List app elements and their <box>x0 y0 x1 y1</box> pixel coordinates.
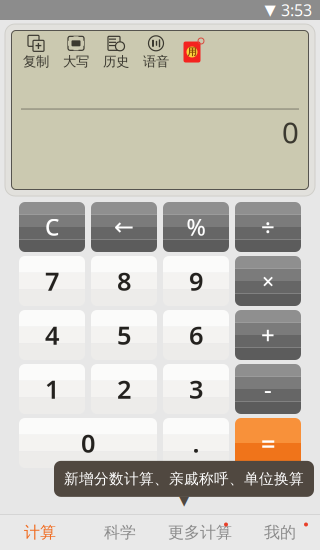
staticText: 计算 <box>24 523 56 542</box>
staticText: ← <box>114 213 134 241</box>
button[interactable]: 9 <box>163 256 229 306</box>
button[interactable]: 2 <box>91 364 157 414</box>
staticText: C <box>45 212 59 242</box>
staticText: 2 <box>117 372 131 406</box>
button[interactable]: 4 <box>19 310 85 360</box>
staticText: - <box>264 373 272 405</box>
button[interactable]: % <box>163 202 229 252</box>
button[interactable]: 6 <box>163 310 229 360</box>
button[interactable]: . <box>163 418 229 468</box>
staticText: 8 <box>117 264 131 298</box>
button[interactable]: Red packet <box>177 34 207 70</box>
button[interactable]: ← <box>91 202 157 252</box>
button[interactable]: 大写 <box>57 34 95 70</box>
button[interactable]: 我的 <box>240 514 320 550</box>
button[interactable]: 8 <box>91 256 157 306</box>
staticText: ÷ <box>261 211 275 243</box>
staticText: 4 <box>45 318 59 352</box>
staticText: ▼ <box>264 2 275 18</box>
staticText: 7 <box>45 264 59 298</box>
button[interactable]: 科学 <box>80 514 160 550</box>
button[interactable]: 更多计算 <box>160 514 240 550</box>
button[interactable]: = <box>235 418 301 468</box>
button[interactable]: × <box>235 256 301 306</box>
button[interactable]: 计算 <box>0 514 80 550</box>
staticText: + <box>261 319 275 351</box>
staticText: 语音 <box>143 53 169 70</box>
button[interactable]: 5 <box>91 310 157 360</box>
staticText: 我的 <box>264 523 296 542</box>
staticText: × <box>262 267 274 295</box>
staticText: 历史 <box>103 53 129 70</box>
staticText: 复制 <box>23 53 49 70</box>
staticText: 大写 <box>63 53 89 70</box>
staticText: . <box>192 426 199 460</box>
button[interactable]: - <box>235 364 301 414</box>
button[interactable]: 语音 <box>137 34 175 70</box>
staticText: 6 <box>189 318 203 352</box>
staticText: 3 <box>189 372 203 406</box>
staticText: = <box>261 426 275 460</box>
staticText: % <box>186 212 205 242</box>
staticText: 用 <box>187 46 196 58</box>
button[interactable]: 7 <box>19 256 85 306</box>
button[interactable]: + <box>17 34 55 70</box>
staticText: 1 <box>45 372 59 406</box>
button[interactable]: C <box>19 202 85 252</box>
staticText: 新增分数计算、亲戚称呼、单位换算 <box>64 470 304 488</box>
staticText: + <box>35 37 42 53</box>
staticText: ▼ <box>179 493 189 508</box>
staticText: 3:53 <box>281 0 312 21</box>
staticText: 9 <box>189 264 203 298</box>
button[interactable]: ÷ <box>235 202 301 252</box>
button[interactable]: 3 <box>163 364 229 414</box>
staticText: 5 <box>117 318 131 352</box>
staticText: 更多计算 <box>168 523 232 542</box>
staticText: 科学 <box>104 523 136 542</box>
staticText: 0 <box>81 426 95 460</box>
staticText: 0 <box>282 112 299 151</box>
button[interactable]: 0 <box>19 418 157 468</box>
button[interactable]: 历史 <box>97 34 135 70</box>
button[interactable]: + <box>235 310 301 360</box>
button[interactable]: 1 <box>19 364 85 414</box>
